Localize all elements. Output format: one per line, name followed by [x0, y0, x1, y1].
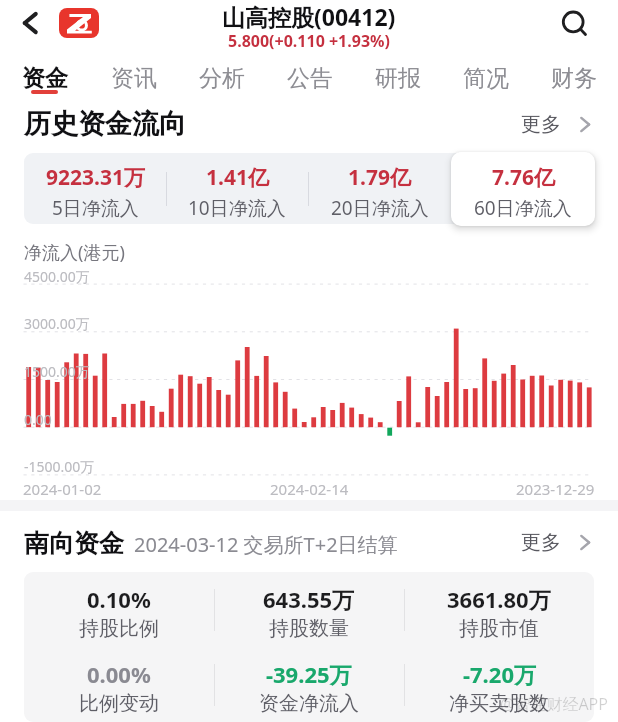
button[interactable]: 7.76亿 — [451, 152, 595, 226]
staticText: 2024-03-12 交易所T+2日结算 — [134, 531, 398, 558]
staticText: -1500.00万 — [24, 457, 95, 476]
button[interactable]: 0.10% — [24, 572, 214, 647]
staticText: 2024-01-02 — [23, 479, 102, 499]
staticText: 历史资金流向 — [24, 107, 186, 141]
button[interactable]: 资讯 — [89, 64, 178, 100]
staticText: 7.76亿 — [492, 163, 555, 192]
staticText: 更多 — [521, 112, 561, 137]
button[interactable]: 分析 — [178, 64, 266, 100]
button[interactable]: 7.76亿 — [451, 153, 594, 224]
staticText: 20日净流入 — [331, 195, 429, 221]
staticText: 0.00% — [87, 659, 151, 689]
staticText: 10日净流入 — [188, 195, 286, 221]
button[interactable]: 研报 — [354, 64, 442, 100]
staticText: 3000.00万 — [24, 314, 90, 333]
staticText: 60日净流入 — [474, 195, 572, 221]
button[interactable]: 简况 — [442, 64, 530, 100]
staticText: 南向资金 — [24, 528, 124, 559]
staticText: 财务 — [551, 64, 597, 93]
button[interactable]: -39.25万 — [214, 647, 404, 722]
staticText: 5日净流入 — [52, 195, 139, 221]
staticText: 2024-02-14 — [270, 479, 349, 499]
staticText: 1.79亿 — [348, 163, 411, 192]
button[interactable]: 财务 — [530, 64, 618, 100]
staticText: 7.76亿 — [491, 163, 554, 192]
staticText: 净买卖股数 — [449, 691, 549, 716]
button[interactable]: Search — [552, 1, 598, 47]
button[interactable]: 资金 — [0, 64, 89, 100]
staticText: 更多 — [521, 530, 561, 555]
staticText: 9223.31万 — [46, 163, 145, 192]
staticText: 资讯 — [111, 64, 157, 93]
staticText: 山高控股(00412) — [222, 1, 396, 32]
staticText: @智通财经APP — [500, 693, 608, 715]
button[interactable]: App logo — [59, 8, 99, 38]
staticText: 0.10% — [87, 584, 151, 614]
button[interactable]: 公告 — [266, 64, 354, 100]
staticText: 简况 — [463, 64, 509, 93]
staticText: 研报 — [375, 64, 421, 93]
button[interactable]: -7.20万 — [404, 647, 594, 722]
staticText: -39.25万 — [266, 659, 352, 689]
staticText: 公告 — [287, 64, 333, 93]
staticText: 0.00 — [24, 410, 52, 429]
staticText: 3661.80万 — [447, 584, 551, 614]
staticText: 分析 — [199, 64, 245, 93]
staticText: 持股比例 — [79, 616, 159, 641]
button[interactable]: 更多 — [521, 530, 593, 555]
staticText: 60日净流入 — [474, 195, 572, 221]
staticText: 1500.00万 — [24, 362, 90, 381]
button[interactable]: 3661.80万 — [404, 572, 594, 647]
staticText: 4500.00万 — [24, 267, 90, 286]
staticText: 资金净流入 — [259, 691, 359, 716]
button[interactable]: 0.00% — [24, 647, 214, 722]
staticText: 2023-12-29 — [516, 479, 595, 499]
staticText: 净流入(港元) — [24, 240, 125, 265]
staticText: 资金 — [22, 64, 68, 93]
staticText: 5.800(+0.110 +1.93%) — [228, 30, 390, 52]
staticText: 持股市值 — [459, 616, 539, 641]
button[interactable]: 643.55万 — [214, 572, 404, 647]
button[interactable]: 1.41亿 — [166, 153, 308, 224]
staticText: -7.20万 — [463, 659, 536, 689]
button[interactable]: 9223.31万 — [24, 153, 166, 224]
button[interactable]: 1.79亿 — [308, 153, 451, 224]
staticText: 643.55万 — [263, 584, 355, 614]
staticText: 1.41亿 — [206, 163, 269, 192]
button[interactable]: 7.76亿 — [451, 152, 595, 226]
button[interactable]: Back — [8, 1, 52, 45]
button[interactable]: 更多 — [521, 112, 593, 137]
staticText: 比例变动 — [79, 691, 159, 716]
staticText: 持股数量 — [269, 616, 349, 641]
